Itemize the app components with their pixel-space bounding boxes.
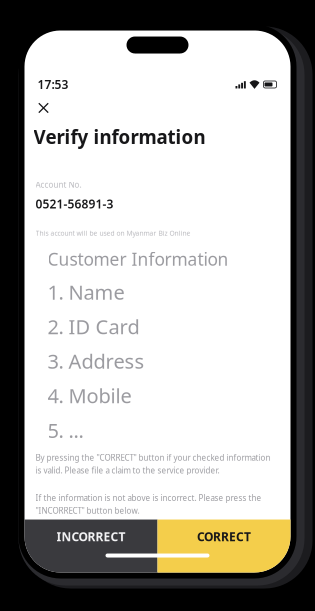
staticText: 0521-56891-3: [35, 196, 113, 212]
staticText: 3. Address: [47, 348, 144, 374]
staticText: 2. ID Card: [47, 313, 139, 340]
staticText: 5. ...: [47, 417, 83, 443]
staticText: 4. Mobile: [47, 382, 131, 409]
staticText: By pressing the "CORRECT" button if your…: [35, 452, 270, 476]
staticText: Customer Information: [47, 248, 228, 271]
staticText: Account No.: [35, 179, 81, 190]
staticText: If the information is not above is incor…: [35, 493, 261, 516]
staticText: This account will be used on Myanmar Biz…: [35, 229, 190, 238]
staticText: INCORRECT: [56, 529, 125, 544]
staticText: 17:53: [37, 76, 68, 92]
button[interactable]: CORRECT: [157, 520, 290, 572]
staticText: CORRECT: [197, 529, 251, 544]
staticText: 1. Name: [47, 279, 124, 305]
button[interactable]: Close: [33, 100, 53, 115]
button[interactable]: INCORRECT: [24, 520, 157, 572]
staticText: Verify information: [33, 124, 205, 149]
